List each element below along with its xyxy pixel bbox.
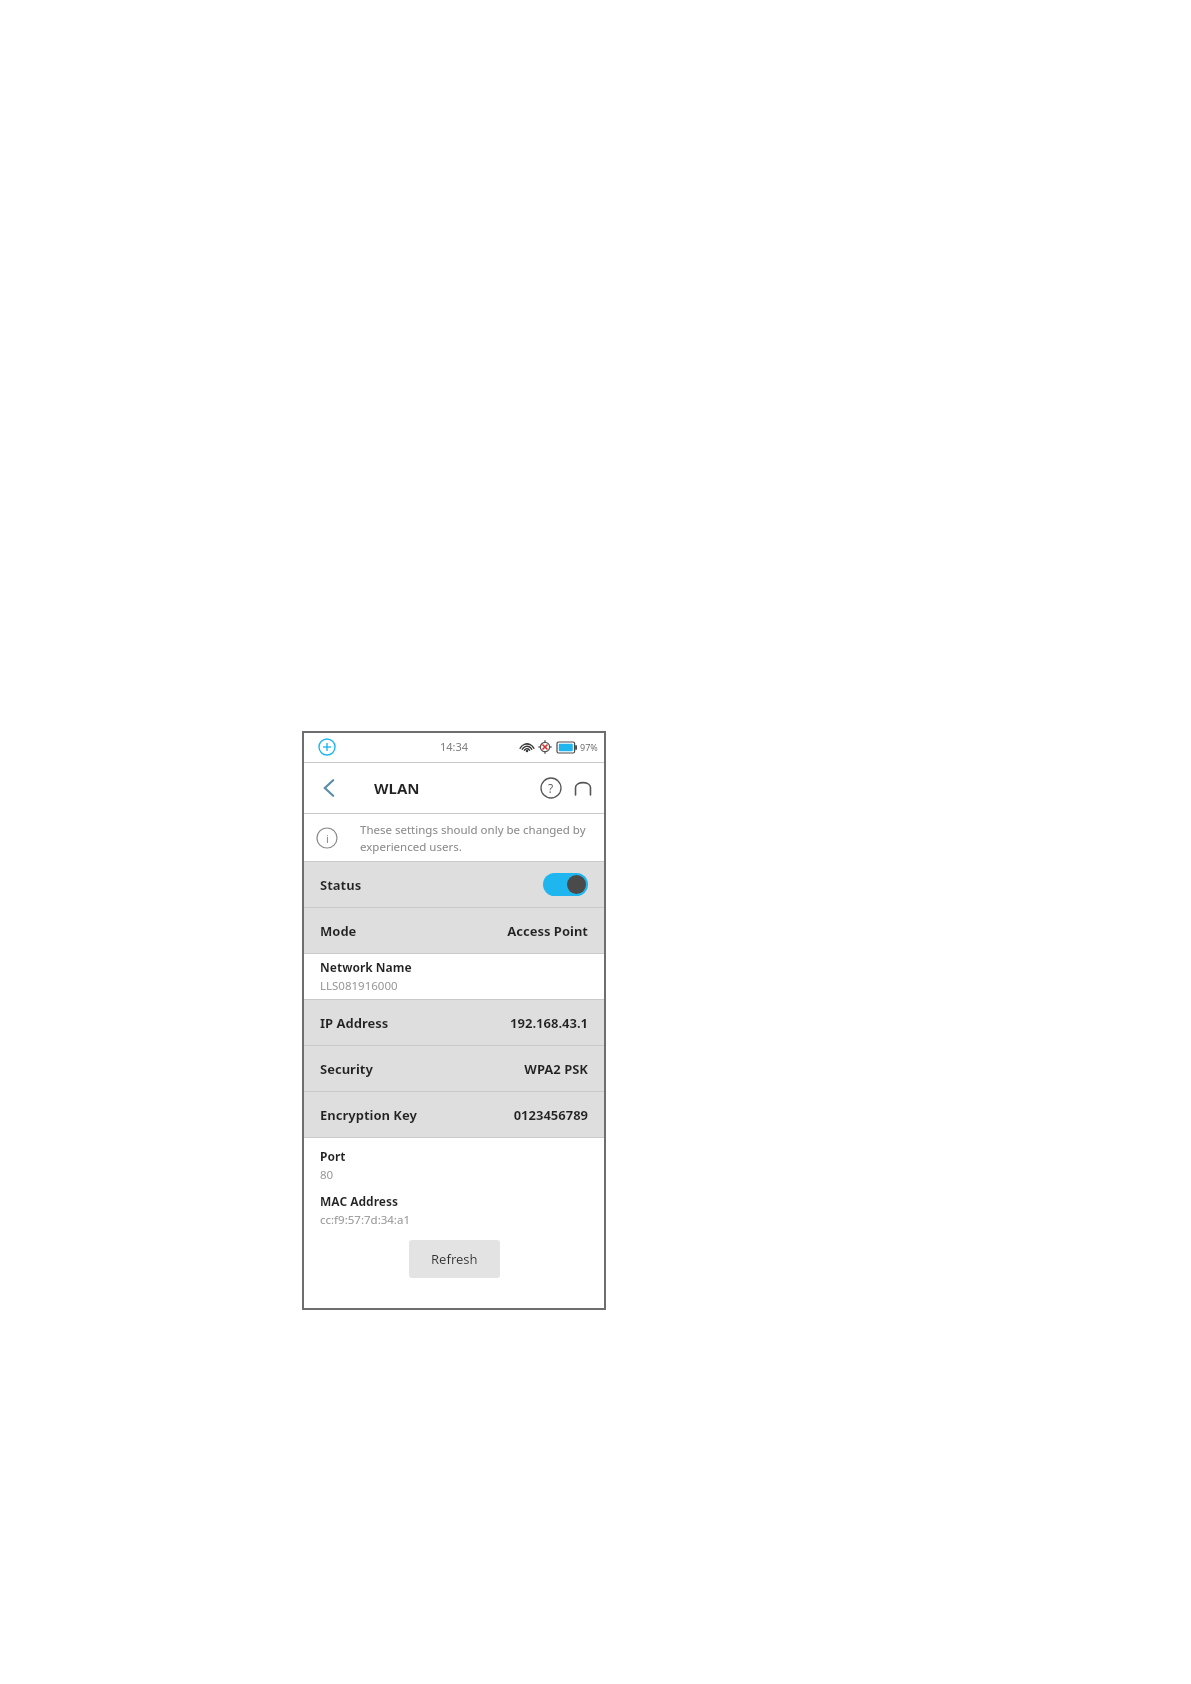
staticText: IP Address bbox=[320, 1014, 389, 1032]
staticText: ? bbox=[548, 780, 554, 796]
button[interactable]: Security bbox=[302, 1046, 606, 1091]
staticText: 0123456789 bbox=[513, 1106, 588, 1124]
staticText: 97% bbox=[580, 741, 598, 753]
staticText: LLS081916000 bbox=[320, 978, 398, 994]
staticText: Network Name bbox=[320, 959, 412, 975]
staticText: 14:34 bbox=[440, 739, 469, 754]
staticText: These settings should only be changed by… bbox=[360, 822, 592, 854]
button[interactable]: Mode bbox=[302, 908, 606, 953]
button[interactable]: Help bbox=[540, 777, 562, 799]
button[interactable]: Home bbox=[572, 777, 594, 799]
staticText: 192.168.43.1 bbox=[510, 1014, 588, 1032]
staticText: Access Point bbox=[507, 922, 588, 940]
staticText: 80 bbox=[320, 1167, 334, 1183]
staticText: MAC Address bbox=[320, 1193, 399, 1209]
staticText: i bbox=[326, 831, 329, 846]
button[interactable]: IP Address bbox=[302, 1000, 606, 1045]
button[interactable]: Encryption Key bbox=[302, 1092, 606, 1137]
staticText: Port bbox=[320, 1148, 346, 1164]
staticText: Refresh bbox=[431, 1250, 478, 1268]
button[interactable]: Add bbox=[318, 738, 336, 756]
button[interactable]: MAC Address bbox=[302, 1193, 606, 1228]
button[interactable]: Refresh bbox=[409, 1240, 500, 1278]
staticText: WLAN bbox=[374, 778, 420, 798]
staticText: cc:f9:57:7d:34:a1 bbox=[320, 1212, 410, 1228]
staticText: Encryption Key bbox=[320, 1106, 417, 1124]
button[interactable]: Back bbox=[316, 775, 342, 801]
button[interactable]: Status bbox=[302, 862, 606, 907]
staticText: Status bbox=[320, 876, 362, 894]
button[interactable]: Status toggle bbox=[543, 873, 588, 896]
staticText: WPA2 PSK bbox=[524, 1060, 588, 1078]
button[interactable]: Port bbox=[302, 1148, 606, 1183]
staticText: Security bbox=[320, 1060, 373, 1078]
button[interactable]: Network Name bbox=[302, 954, 606, 999]
staticText: Mode bbox=[320, 922, 357, 940]
